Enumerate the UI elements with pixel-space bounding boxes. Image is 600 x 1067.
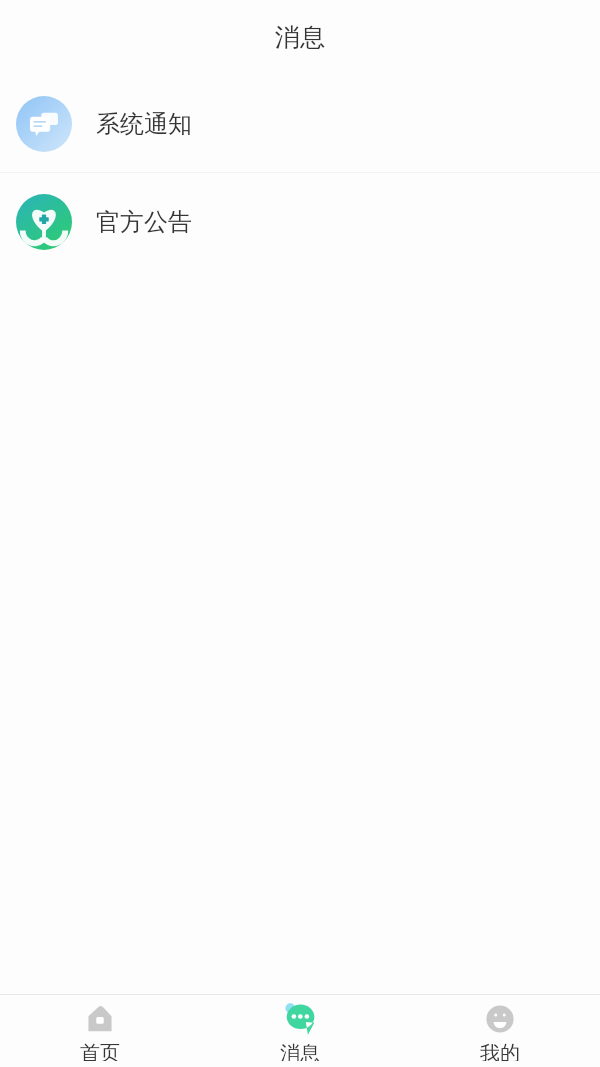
staticText: 消息	[275, 22, 325, 53]
button[interactable]: 首页	[0, 995, 200, 1067]
button[interactable]: 消息	[200, 995, 400, 1067]
staticText: 我的	[480, 1041, 520, 1061]
staticText: 首页	[80, 1041, 120, 1061]
staticText: 系统通知	[96, 109, 192, 139]
other: 我的	[482, 1001, 518, 1037]
button[interactable]: 我的	[400, 995, 600, 1067]
button[interactable]: 系统通知	[0, 75, 600, 172]
other: 首页	[82, 1001, 118, 1037]
staticText: 官方公告	[96, 207, 192, 237]
button[interactable]: 官方公告	[0, 173, 600, 270]
other: 消息	[282, 1001, 318, 1037]
staticText: 消息	[280, 1041, 320, 1061]
